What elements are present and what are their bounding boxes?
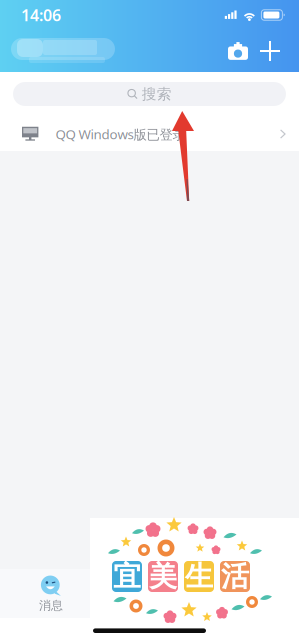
button[interactable]: Camera [221,34,255,68]
staticText: 14:06 [21,4,61,26]
staticText: 宜 [113,559,141,594]
button[interactable]: Add [255,34,285,68]
staticText: 活 [221,559,249,594]
staticText: 生 [185,559,213,594]
button[interactable]: 消息 [13,569,89,618]
staticText: 搜索 [142,85,172,103]
staticText: QQ Windows版已登录 [55,125,185,143]
staticText: 消息 [39,598,63,613]
staticText: 美 [149,559,177,594]
button[interactable]: 搜索 [13,82,286,106]
button[interactable]: QQ Windows版已登录 [0,117,299,151]
